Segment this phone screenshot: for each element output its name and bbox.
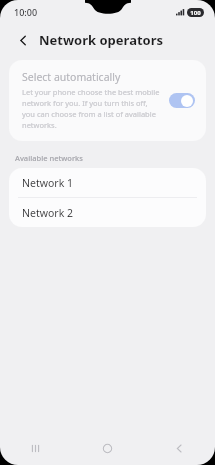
button[interactable]: Home — [71, 431, 143, 465]
button[interactable]: Network 1 — [9, 168, 206, 197]
staticText: Network operators — [39, 31, 164, 49]
staticText: 100 — [190, 9, 201, 17]
staticText: Network 2 — [22, 206, 73, 220]
button[interactable]: Select automatically toggle — [169, 93, 195, 108]
button[interactable]: Select automatically — [9, 60, 206, 141]
staticText: Let your phone choose the best mobile ne… — [22, 87, 161, 130]
button[interactable]: Recent apps — [0, 431, 71, 465]
button[interactable]: Network 2 — [9, 198, 206, 227]
staticText: 10:00 — [14, 6, 38, 18]
button[interactable]: Back — [12, 29, 34, 51]
button[interactable]: Back — [143, 431, 215, 465]
staticText: Available networks — [15, 153, 83, 163]
staticText: Network 1 — [22, 176, 73, 190]
staticText: Select automatically — [22, 70, 121, 84]
